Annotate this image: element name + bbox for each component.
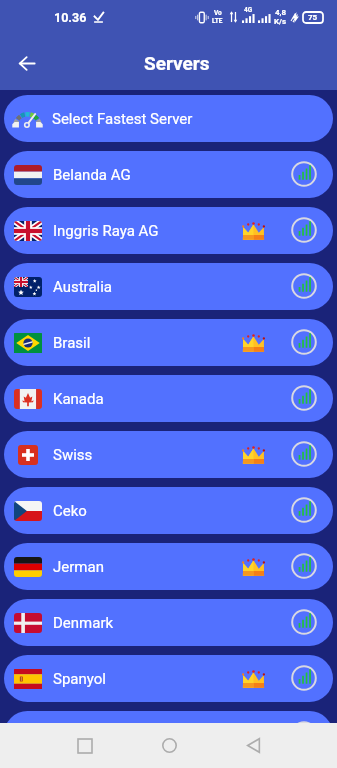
- staticText: Denmark: [53, 614, 114, 632]
- staticText: Brasil: [53, 334, 91, 352]
- button[interactable]: Belanda AG: [4, 151, 333, 198]
- button[interactable]: Swiss: [4, 431, 333, 478]
- staticText: Australia: [53, 278, 113, 296]
- button[interactable]: Recents: [43, 723, 127, 768]
- staticText: 10.36: [54, 10, 87, 25]
- staticText: Select Fastest Server: [52, 110, 193, 128]
- button[interactable]: Ceko: [4, 487, 333, 534]
- staticText: Perancis: [53, 726, 111, 744]
- button[interactable]: Home: [127, 723, 211, 768]
- staticText: Kanada: [53, 390, 104, 408]
- staticText: Servers: [144, 52, 210, 74]
- button[interactable]: Back: [211, 723, 295, 768]
- button[interactable]: Denmark: [4, 599, 333, 646]
- staticText: LTE: [212, 17, 223, 25]
- button[interactable]: Jerman: [4, 543, 333, 590]
- button[interactable]: Spanyol: [4, 655, 333, 702]
- staticText: K/s: [274, 17, 287, 26]
- staticText: Swiss: [53, 446, 93, 464]
- staticText: 4,8: [275, 8, 287, 17]
- button[interactable]: Brasil: [4, 319, 333, 366]
- button[interactable]: Australia: [4, 263, 333, 310]
- button[interactable]: Inggris Raya AG: [4, 207, 333, 254]
- button[interactable]: Back: [11, 46, 43, 78]
- staticText: Belanda AG: [53, 166, 131, 184]
- button[interactable]: Kanada: [4, 375, 333, 422]
- staticText: Ceko: [53, 502, 87, 520]
- staticText: Inggris Raya AG: [53, 222, 159, 240]
- staticText: Vo: [214, 9, 222, 17]
- staticText: 4G: [244, 6, 253, 14]
- staticText: Jerman: [53, 558, 104, 576]
- button[interactable]: Select Fastest Server: [4, 95, 333, 142]
- staticText: Spanyol: [53, 670, 106, 688]
- button[interactable]: Perancis: [4, 711, 333, 758]
- staticText: 75: [308, 13, 318, 22]
